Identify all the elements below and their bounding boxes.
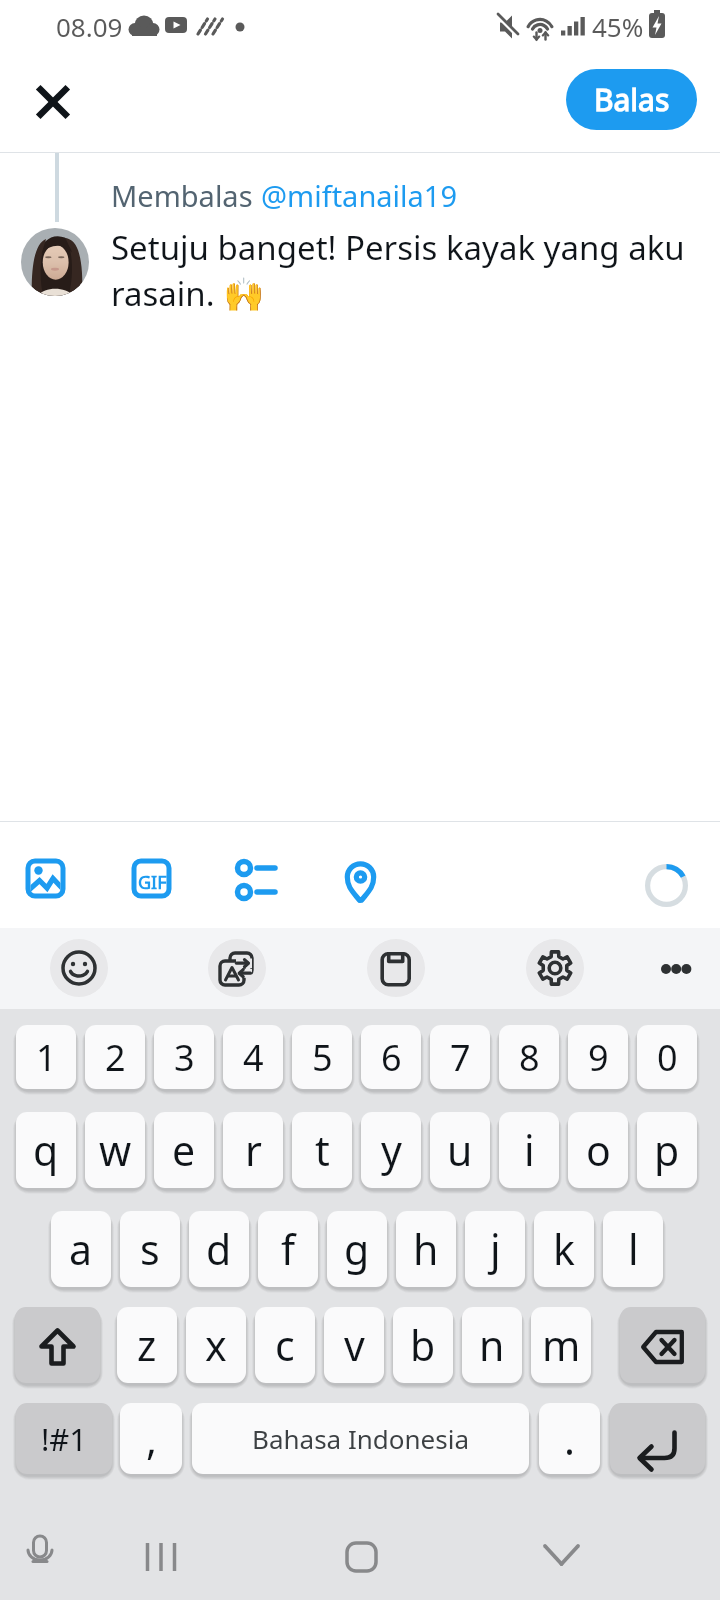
button[interactable]: Enter — [610, 1403, 705, 1474]
button[interactable]: Add GIF — [114, 834, 188, 908]
button[interactable]: o — [568, 1112, 628, 1188]
button[interactable]: z — [117, 1307, 177, 1383]
button[interactable]: u — [430, 1112, 490, 1188]
staticText: b — [410, 1317, 436, 1373]
staticText: GIF — [138, 870, 167, 895]
button[interactable]: Voice input — [14, 1528, 66, 1580]
staticText: q — [33, 1122, 59, 1178]
staticText: u — [447, 1122, 473, 1178]
button[interactable]: w — [85, 1112, 145, 1188]
button[interactable]: Clipboard — [367, 939, 425, 997]
button[interactable]: b — [393, 1307, 453, 1383]
staticText: j — [490, 1221, 501, 1277]
button[interactable]: f — [258, 1211, 318, 1287]
staticText: Setuju banget! Persis kayak yang aku ras… — [111, 225, 711, 316]
staticText: p — [654, 1122, 680, 1178]
staticText: v — [344, 1317, 365, 1373]
button[interactable]: h — [396, 1211, 456, 1287]
button[interactable]: c — [255, 1307, 315, 1383]
button[interactable]: x — [186, 1307, 246, 1383]
button[interactable]: 5 — [292, 1025, 352, 1089]
staticText: i — [524, 1122, 535, 1178]
button[interactable]: 6 — [361, 1025, 421, 1089]
button[interactable]: Add location — [323, 829, 397, 903]
button[interactable]: m — [531, 1307, 591, 1383]
button[interactable]: r — [223, 1112, 283, 1188]
button[interactable]: Add photo — [8, 834, 82, 908]
staticText: 45% — [592, 9, 644, 44]
button[interactable]: y — [361, 1112, 421, 1188]
button[interactable]: d — [189, 1211, 249, 1287]
button[interactable]: 3 — [154, 1025, 214, 1089]
staticText: d — [206, 1221, 232, 1277]
staticText: , — [146, 1411, 157, 1467]
button[interactable]: a — [51, 1211, 111, 1287]
button[interactable]: v — [324, 1307, 384, 1383]
button[interactable]: Space — [192, 1403, 529, 1474]
button[interactable]: 1 — [16, 1025, 76, 1089]
button[interactable]: Emoji — [50, 939, 108, 997]
button[interactable]: Recents — [135, 1528, 187, 1580]
staticText: Balas — [594, 79, 670, 120]
button[interactable]: 2 — [85, 1025, 145, 1089]
staticText: . — [564, 1411, 575, 1467]
button[interactable]: Add poll — [219, 832, 293, 906]
staticText: 9 — [588, 1033, 609, 1082]
button[interactable]: q — [16, 1112, 76, 1188]
button[interactable]: More options — [640, 939, 698, 997]
staticText: z — [137, 1317, 157, 1373]
button[interactable]: Backspace — [620, 1307, 705, 1383]
button[interactable]: 9 — [568, 1025, 628, 1089]
staticText: t — [315, 1122, 330, 1178]
button[interactable]: t — [292, 1112, 352, 1188]
staticText: r — [245, 1122, 262, 1178]
staticText: h — [413, 1221, 439, 1277]
staticText: y — [381, 1122, 402, 1178]
staticText: a — [69, 1221, 93, 1277]
staticText: 7 — [450, 1033, 471, 1082]
button[interactable]: Translate — [208, 939, 266, 997]
staticText: e — [172, 1122, 196, 1178]
button[interactable]: s — [120, 1211, 180, 1287]
staticText: 08.09 — [56, 9, 123, 44]
button[interactable]: k — [534, 1211, 594, 1287]
button[interactable]: , — [120, 1403, 182, 1474]
staticText: s — [140, 1221, 160, 1277]
button[interactable]: l — [603, 1211, 663, 1287]
staticText: 4 — [243, 1033, 264, 1082]
button[interactable]: 4 — [223, 1025, 283, 1089]
button[interactable]: n — [462, 1307, 522, 1383]
staticText: l — [628, 1221, 639, 1277]
button[interactable]: 7 — [430, 1025, 490, 1089]
button[interactable]: p — [637, 1112, 697, 1188]
button[interactable]: Balas — [566, 69, 697, 130]
button[interactable]: Home — [335, 1528, 387, 1580]
staticText: m — [542, 1317, 581, 1373]
staticText: 6 — [381, 1033, 402, 1082]
button[interactable]: . — [539, 1403, 600, 1474]
staticText: 8 — [519, 1033, 540, 1082]
button[interactable]: Symbols — [16, 1403, 112, 1474]
button[interactable]: e — [154, 1112, 214, 1188]
staticText: 5 — [312, 1033, 333, 1082]
staticText: w — [99, 1122, 132, 1178]
button[interactable]: Shift — [15, 1307, 100, 1383]
staticText: f — [281, 1221, 296, 1277]
staticText: !#1 — [41, 1418, 88, 1460]
button[interactable]: 0 — [637, 1025, 697, 1089]
button[interactable]: i — [499, 1112, 559, 1188]
button[interactable]: Hide keyboard — [535, 1528, 587, 1580]
staticText: 1 — [36, 1033, 57, 1082]
staticText: g — [344, 1221, 370, 1277]
button[interactable]: j — [465, 1211, 525, 1287]
button[interactable]: Settings — [526, 939, 584, 997]
staticText: Membalas — [111, 176, 261, 215]
staticText: x — [205, 1317, 227, 1373]
staticText: @miftanaila19 — [261, 176, 457, 215]
staticText: 3 — [174, 1033, 195, 1082]
staticText: c — [275, 1317, 295, 1373]
button[interactable]: Close — [22, 69, 84, 131]
staticText: 2 — [105, 1033, 126, 1082]
button[interactable]: 8 — [499, 1025, 559, 1089]
button[interactable]: g — [327, 1211, 387, 1287]
